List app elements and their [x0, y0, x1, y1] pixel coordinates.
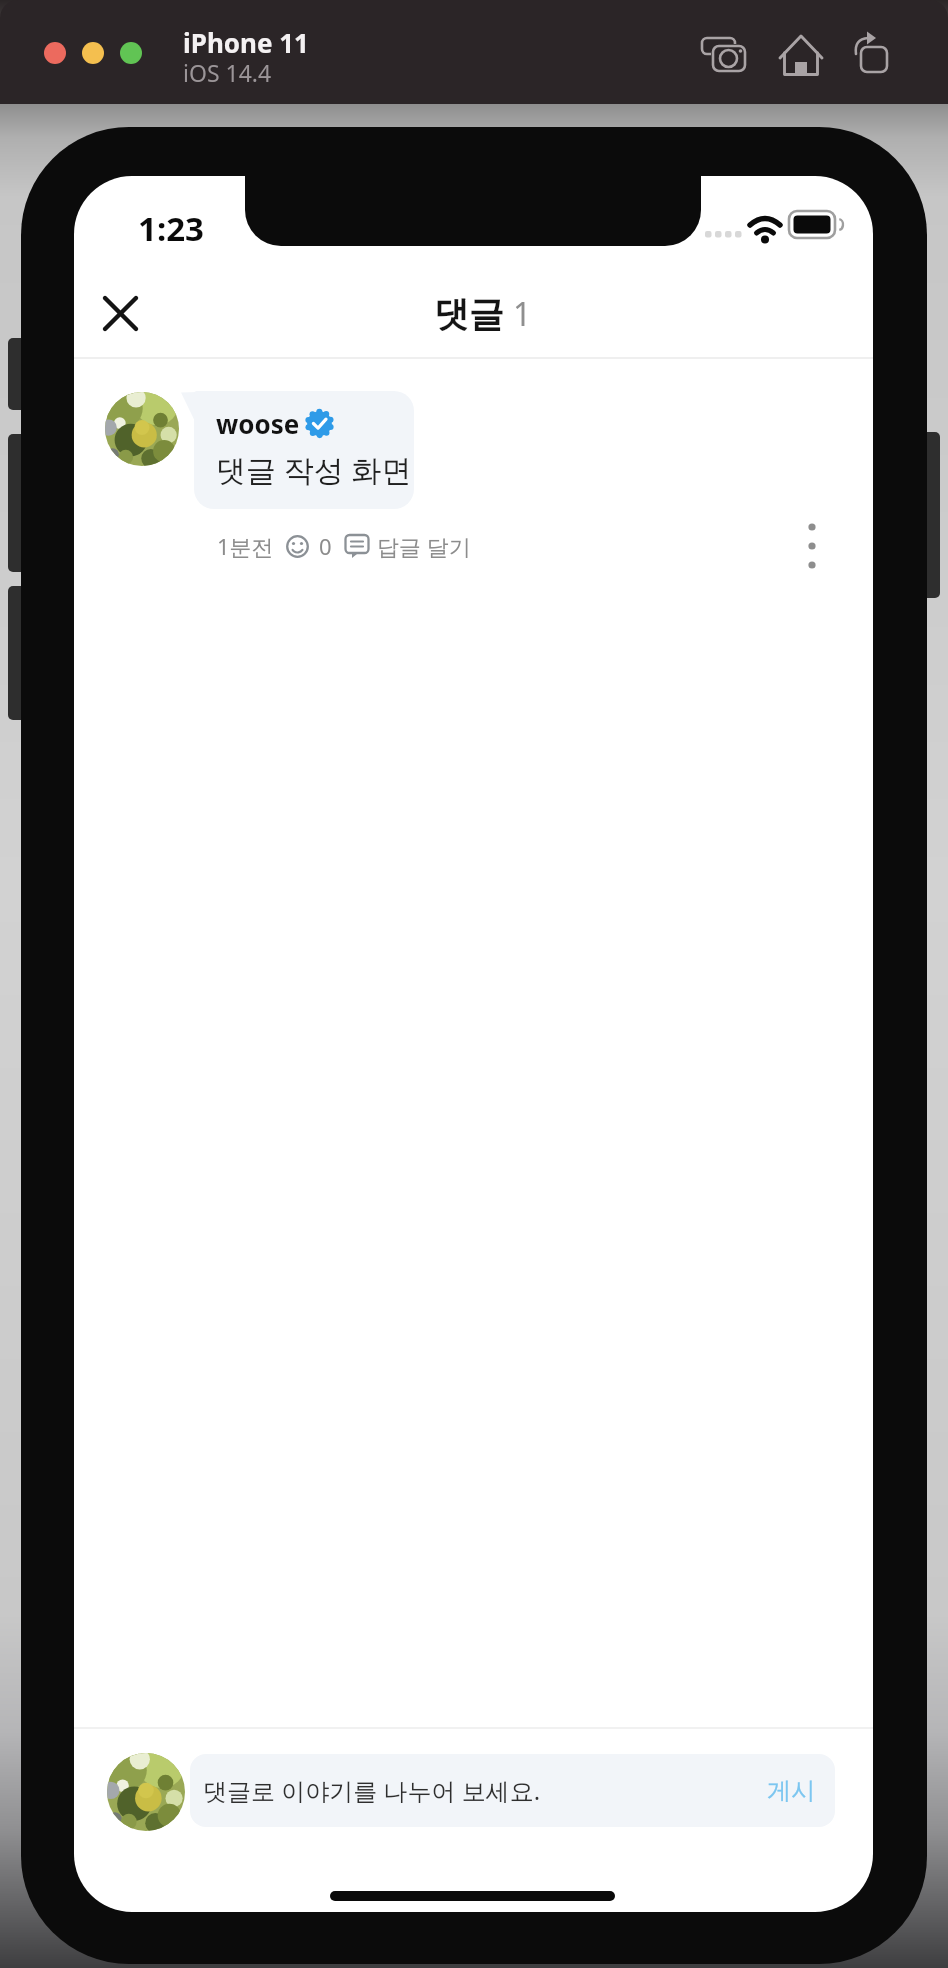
button[interactable]: 댓글로 이야기를 나누어 보세요. [190, 1754, 835, 1827]
button[interactable]: 답글 달기 [344, 531, 471, 561]
staticText: 1 [513, 292, 532, 336]
staticText: 댓글로 이야기를 나누어 보세요. [203, 1774, 541, 1807]
staticText: 답글 달기 [377, 531, 471, 561]
staticText: iOS 14.4 [183, 57, 272, 88]
staticText: 1분전 [217, 531, 274, 561]
staticText: 1:23 [138, 206, 204, 251]
staticText: 댓글 [434, 292, 504, 336]
button[interactable]: 게시 [767, 1776, 815, 1806]
staticText: 0 [319, 531, 332, 561]
staticText: woose [216, 406, 300, 441]
staticText: iPhone 11 [183, 25, 309, 60]
button[interactable] [786, 514, 838, 578]
button[interactable] [88, 281, 152, 345]
button[interactable]: 0 [286, 531, 332, 561]
staticText: 댓글 작성 화면 [216, 449, 412, 490]
